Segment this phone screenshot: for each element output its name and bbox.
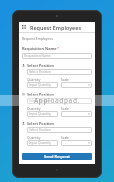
staticText: Send Request — [44, 154, 70, 159]
button[interactable]: Request Employees — [19, 22, 95, 32]
button[interactable]: Select Position — [27, 69, 92, 75]
staticText: Input Quantity — [29, 141, 51, 145]
staticText: Requisition Name — [22, 46, 57, 51]
staticText: Apploadpad. — [34, 96, 80, 105]
staticText: Select Position — [29, 99, 51, 103]
staticText: Scale — [61, 135, 69, 139]
button[interactable]: Select scale — [61, 111, 92, 117]
button[interactable]: Select scale — [61, 82, 92, 88]
staticText: Select Position — [29, 128, 51, 132]
staticText: Scale — [61, 106, 69, 110]
staticText: Quantity — [27, 135, 41, 139]
staticText: Input Quantity — [29, 83, 51, 87]
staticText: Request Employees — [22, 36, 54, 41]
button[interactable]: Input Quantity — [27, 140, 58, 146]
button[interactable]: Select scale — [61, 140, 92, 146]
button[interactable]: Input Quantity — [27, 111, 58, 117]
staticText: Select Position — [27, 92, 55, 97]
staticText: Requisition Name — [24, 54, 51, 58]
staticText: Select Position — [27, 121, 55, 126]
button[interactable]: Send Request — [22, 153, 92, 160]
button[interactable]: Select Position — [27, 98, 92, 104]
staticText: Input Quantity — [29, 112, 51, 116]
button[interactable]: Select Position — [27, 127, 92, 133]
button[interactable]: Input Quantity — [27, 82, 58, 88]
staticText: Request Employees — [30, 24, 82, 31]
staticText: Scale — [61, 77, 69, 81]
staticText: Select Position — [29, 70, 51, 74]
staticText: Quantity — [27, 77, 41, 81]
staticText: Quantity — [27, 106, 41, 110]
staticText: Select Position — [27, 63, 55, 68]
staticText: * — [57, 46, 60, 51]
button[interactable]: Requisition Name — [22, 53, 92, 59]
